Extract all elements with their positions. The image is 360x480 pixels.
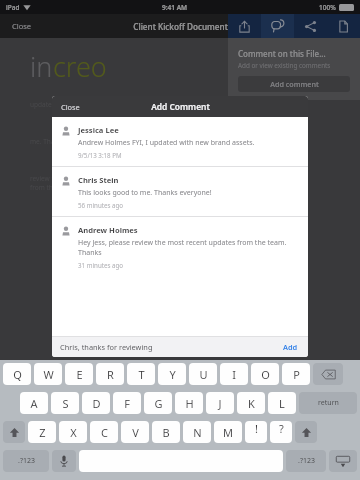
staticText: O bbox=[261, 367, 270, 382]
button[interactable]: Add bbox=[281, 340, 300, 354]
staticText: E bbox=[76, 367, 83, 382]
staticText: me. Thanks bbox=[30, 137, 66, 146]
button[interactable]: B bbox=[152, 421, 180, 443]
button[interactable]: Chris, thanks for reviewing bbox=[60, 337, 300, 357]
staticText: Close bbox=[12, 21, 32, 31]
button[interactable]: A bbox=[20, 392, 48, 414]
staticText: W bbox=[43, 367, 54, 382]
staticText: I bbox=[232, 367, 236, 382]
staticText: D bbox=[92, 396, 101, 411]
staticText: .?123 bbox=[18, 456, 35, 466]
button[interactable]: Comments bbox=[261, 14, 294, 38]
button[interactable]: .?123 bbox=[3, 450, 49, 472]
staticText: C bbox=[101, 425, 108, 440]
button[interactable]: ! bbox=[245, 421, 267, 443]
button[interactable]: J bbox=[206, 392, 234, 414]
staticText: K bbox=[248, 396, 255, 411]
button[interactable]: O bbox=[251, 363, 279, 385]
staticText: ! bbox=[255, 421, 258, 436]
button[interactable]: Space bbox=[79, 450, 283, 472]
staticText: Add bbox=[283, 342, 298, 352]
button[interactable]: Share bbox=[228, 14, 261, 38]
staticText: creo bbox=[53, 48, 107, 85]
staticText: H bbox=[185, 396, 194, 411]
staticText: Add Comment bbox=[151, 101, 210, 112]
staticText: S bbox=[62, 396, 69, 411]
button[interactable]: ? bbox=[270, 421, 292, 443]
staticText: 100% bbox=[319, 3, 336, 12]
staticText: iPad bbox=[6, 3, 20, 12]
staticText: P bbox=[293, 367, 300, 382]
staticText: Andrew Holmes FYI, I updated with new br… bbox=[78, 138, 255, 148]
staticText: Client Kickoff Document bbox=[133, 21, 228, 32]
staticText: Z bbox=[39, 425, 46, 440]
button[interactable]: F bbox=[113, 392, 141, 414]
staticText: from the team. Thanks bbox=[30, 183, 100, 192]
staticText: .?123 bbox=[298, 456, 315, 466]
button[interactable]: Jessica Lee bbox=[52, 117, 308, 167]
button[interactable]: I bbox=[220, 363, 248, 385]
button[interactable]: Shift bbox=[3, 421, 25, 443]
staticText: This looks good to me. Thanks everyone! bbox=[78, 188, 212, 198]
button[interactable]: G bbox=[144, 392, 172, 414]
button[interactable]: Close bbox=[8, 18, 36, 34]
button[interactable]: .?123 bbox=[286, 450, 326, 472]
button[interactable]: Shift bbox=[295, 421, 317, 443]
button[interactable]: Close bbox=[58, 100, 83, 114]
button[interactable]: Add comment bbox=[238, 76, 350, 92]
button[interactable]: Hide keyboard bbox=[329, 450, 357, 472]
button[interactable]: Document info bbox=[327, 14, 360, 38]
button[interactable]: Send to bbox=[294, 14, 327, 38]
staticText: M bbox=[223, 425, 233, 440]
button[interactable]: M bbox=[214, 421, 242, 443]
staticText: updated with new brand assets. bbox=[30, 100, 128, 109]
staticText: Andrew Holmes bbox=[78, 225, 138, 235]
staticText: Jessica Lee bbox=[78, 125, 119, 135]
staticText: 9/5/13 3:18 PM bbox=[78, 151, 122, 159]
button[interactable]: Dictate bbox=[52, 450, 76, 472]
staticText: Q bbox=[13, 367, 22, 382]
staticText: 9:41 AM bbox=[162, 3, 188, 12]
staticText: J bbox=[218, 396, 222, 411]
staticText: Close bbox=[61, 102, 80, 112]
button[interactable]: H bbox=[175, 392, 203, 414]
button[interactable]: L bbox=[268, 392, 296, 414]
button[interactable]: Q bbox=[3, 363, 31, 385]
button[interactable]: E bbox=[65, 363, 93, 385]
staticText: T bbox=[138, 367, 145, 382]
button[interactable]: T bbox=[127, 363, 155, 385]
staticText: in bbox=[30, 48, 53, 85]
staticText: Chris, thanks for reviewing bbox=[60, 342, 281, 352]
staticText: V bbox=[132, 425, 139, 440]
button[interactable]: W bbox=[34, 363, 62, 385]
button[interactable]: Y bbox=[158, 363, 186, 385]
button[interactable]: K bbox=[237, 392, 265, 414]
button[interactable]: S bbox=[51, 392, 79, 414]
button[interactable]: D bbox=[82, 392, 110, 414]
staticText: return bbox=[318, 398, 339, 408]
staticText: G bbox=[154, 396, 163, 411]
button[interactable]: Chris Stein bbox=[52, 167, 308, 217]
button[interactable]: Z bbox=[28, 421, 56, 443]
staticText: A bbox=[30, 396, 38, 411]
button[interactable]: P bbox=[282, 363, 310, 385]
button[interactable]: N bbox=[183, 421, 211, 443]
button[interactable]: U bbox=[189, 363, 217, 385]
staticText: L bbox=[279, 396, 285, 411]
button[interactable]: Backspace bbox=[313, 363, 343, 385]
button[interactable]: C bbox=[90, 421, 118, 443]
button[interactable]: X bbox=[59, 421, 87, 443]
button[interactable]: return bbox=[299, 392, 357, 414]
staticText: ? bbox=[279, 421, 284, 436]
button[interactable]: Andrew Holmes bbox=[52, 217, 308, 276]
staticText: N bbox=[193, 425, 202, 440]
staticText: U bbox=[199, 367, 208, 382]
button[interactable]: R bbox=[96, 363, 124, 385]
staticText: Chris Stein bbox=[78, 175, 119, 185]
staticText: B bbox=[162, 425, 170, 440]
staticText: X bbox=[70, 425, 77, 440]
staticText: F bbox=[124, 396, 130, 411]
button[interactable]: V bbox=[121, 421, 149, 443]
